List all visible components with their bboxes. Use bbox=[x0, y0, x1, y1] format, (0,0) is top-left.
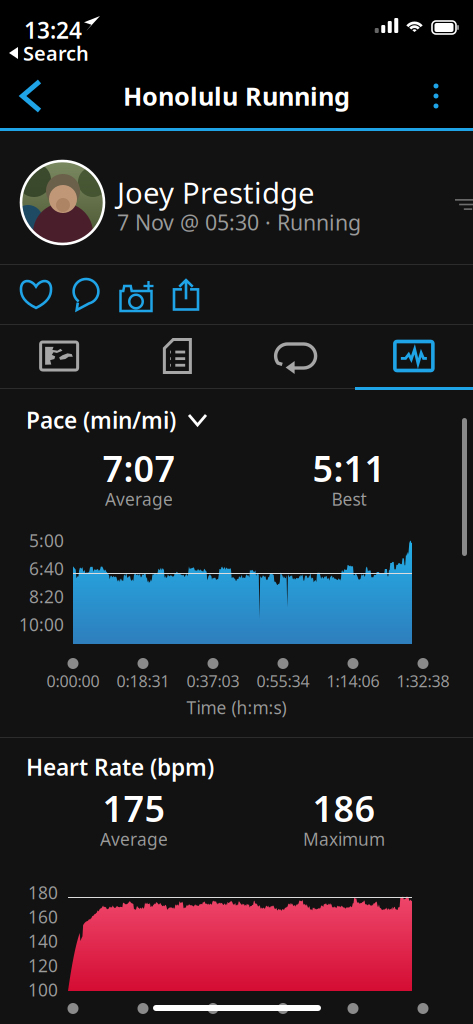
staticText: 0:18:31 bbox=[116, 670, 169, 692]
button[interactable]: Laps bbox=[236, 325, 355, 387]
staticText: Search bbox=[23, 40, 89, 66]
button[interactable]: Map bbox=[0, 325, 118, 387]
staticText: 5:00 bbox=[29, 529, 64, 552]
staticText: Honolulu Running bbox=[123, 79, 350, 113]
staticText: 100 bbox=[28, 978, 58, 1001]
staticText: 0:37:03 bbox=[186, 670, 239, 692]
staticText: Heart Rate (bpm) bbox=[26, 752, 214, 782]
button[interactable]: Share bbox=[161, 265, 211, 324]
staticText: 120 bbox=[28, 954, 58, 977]
button[interactable]: Like bbox=[11, 265, 61, 324]
button[interactable]: Search bbox=[0, 41, 160, 65]
staticText: 1:14:06 bbox=[326, 670, 379, 692]
staticText: 7 Nov @ 05:30 · Running bbox=[117, 208, 361, 236]
staticText: Joey Prestidge bbox=[117, 173, 315, 212]
staticText: Maximum bbox=[303, 827, 385, 850]
staticText: 6:40 bbox=[29, 557, 64, 580]
button[interactable]: Charts bbox=[355, 325, 473, 387]
staticText: 8:20 bbox=[29, 585, 64, 608]
staticText: 1:32:38 bbox=[396, 670, 449, 692]
staticText: Best bbox=[331, 487, 366, 510]
button[interactable]: Back bbox=[5, 64, 57, 128]
button[interactable]: More options bbox=[410, 64, 462, 128]
staticText: Time (h:m:s) bbox=[186, 696, 286, 719]
staticText: 10:00 bbox=[19, 613, 64, 636]
staticText: 175 bbox=[102, 784, 165, 832]
button[interactable]: Comment bbox=[61, 265, 111, 324]
staticText: 140 bbox=[28, 930, 58, 953]
staticText: 5:11 bbox=[312, 444, 385, 492]
staticText: 13:24 bbox=[24, 15, 82, 45]
button[interactable]: Add photo bbox=[111, 265, 161, 324]
staticText: Pace (min/mi) bbox=[26, 405, 176, 435]
button[interactable]: Pace (min/mi) bbox=[0, 398, 300, 442]
button[interactable]: Details bbox=[118, 325, 236, 387]
staticText: 160 bbox=[28, 905, 58, 928]
staticText: 0:55:34 bbox=[256, 670, 309, 692]
staticText: 180 bbox=[28, 881, 58, 904]
staticText: 0:00:00 bbox=[46, 670, 99, 692]
staticText: 186 bbox=[312, 784, 375, 832]
staticText: Average bbox=[105, 487, 173, 510]
staticText: 7:07 bbox=[102, 444, 175, 492]
staticText: Average bbox=[100, 827, 168, 850]
